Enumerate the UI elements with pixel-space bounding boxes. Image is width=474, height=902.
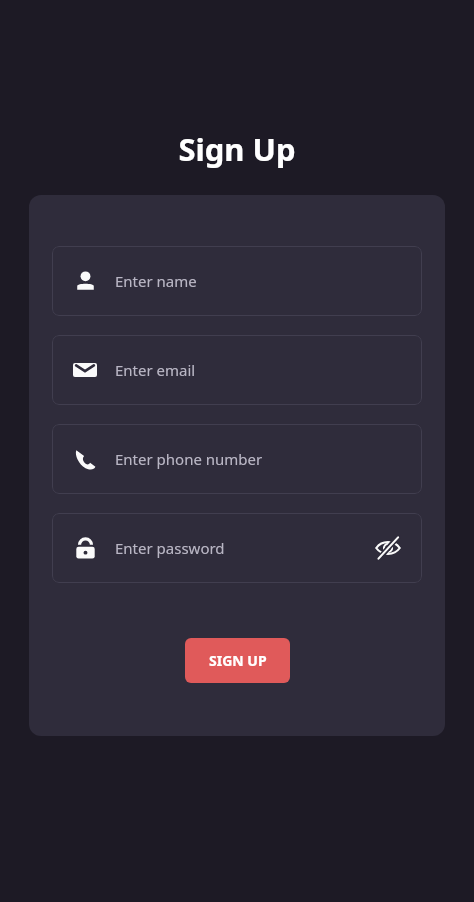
staticText: Enter email	[115, 360, 196, 380]
button[interactable]: SIGN UP	[185, 638, 290, 683]
button[interactable]: Enter email	[52, 335, 422, 405]
staticText: Enter phone number	[115, 449, 263, 469]
staticText: SIGN UP	[209, 651, 267, 670]
button[interactable]: Enter name	[52, 246, 422, 316]
button[interactable]: Show password	[372, 532, 404, 564]
button[interactable]: Enter password	[52, 513, 422, 583]
staticText: Enter password	[115, 538, 225, 558]
button[interactable]: Enter phone number	[52, 424, 422, 494]
staticText: Enter name	[115, 271, 197, 291]
staticText: Sign Up	[0, 128, 474, 170]
